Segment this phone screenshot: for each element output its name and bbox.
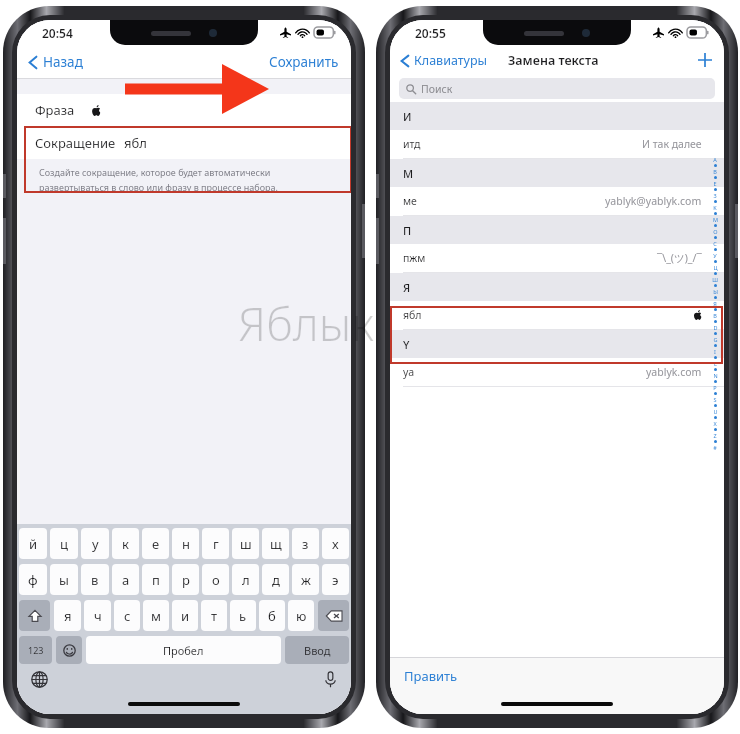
staticText: Ц bbox=[713, 264, 718, 271]
button[interactable]: ы bbox=[50, 564, 78, 595]
button[interactable]: Backspace bbox=[318, 600, 349, 631]
button[interactable]: ябл bbox=[390, 301, 724, 329]
button[interactable]: ф bbox=[19, 564, 47, 595]
button[interactable]: ч bbox=[84, 600, 111, 631]
staticText: Z bbox=[713, 432, 717, 439]
button[interactable]: ме bbox=[390, 187, 724, 215]
button[interactable]: э bbox=[322, 564, 349, 595]
staticText: A bbox=[713, 156, 717, 163]
staticText: З bbox=[713, 192, 717, 199]
staticText: а bbox=[122, 571, 130, 589]
button[interactable]: Клавиатуры bbox=[390, 47, 496, 74]
button[interactable]: 123 bbox=[19, 636, 52, 664]
staticText: # bbox=[713, 444, 717, 451]
button[interactable]: о bbox=[202, 564, 229, 595]
staticText: Я bbox=[713, 300, 717, 307]
staticText: з bbox=[302, 535, 309, 553]
staticText: пжм bbox=[403, 251, 426, 265]
staticText: ф bbox=[28, 571, 38, 589]
button[interactable]: ж bbox=[292, 564, 319, 595]
staticText: P bbox=[713, 384, 717, 391]
staticText: N bbox=[713, 372, 718, 379]
button[interactable]: ya bbox=[390, 358, 724, 386]
button[interactable]: ш bbox=[232, 528, 259, 559]
staticText: т bbox=[211, 607, 218, 625]
staticText: G bbox=[713, 336, 718, 343]
staticText: U bbox=[713, 408, 718, 415]
button[interactable]: Ввод bbox=[285, 636, 349, 664]
button[interactable]: т bbox=[201, 600, 227, 631]
button[interactable]: Фраза bbox=[17, 94, 351, 126]
button[interactable]: у bbox=[81, 528, 109, 559]
button[interactable]: Shift bbox=[19, 600, 50, 631]
button[interactable]: и bbox=[172, 600, 198, 631]
staticText: B bbox=[713, 312, 717, 319]
button[interactable]: н bbox=[172, 528, 199, 559]
staticText: Ш bbox=[712, 276, 718, 283]
button[interactable]: д bbox=[262, 564, 289, 595]
staticText: Y bbox=[403, 337, 410, 352]
staticText: Я bbox=[403, 280, 411, 295]
staticText: Назад bbox=[43, 53, 83, 71]
button[interactable]: л bbox=[232, 564, 259, 595]
staticText: щ bbox=[270, 535, 282, 553]
button[interactable]: с bbox=[114, 600, 140, 631]
button[interactable]: п bbox=[142, 564, 169, 595]
button[interactable]: Dictation bbox=[324, 671, 337, 688]
staticText: о bbox=[212, 571, 220, 589]
staticText: Клавиатуры bbox=[414, 52, 488, 69]
staticText: ябл bbox=[124, 134, 147, 152]
button[interactable]: к bbox=[112, 528, 139, 559]
staticText: я bbox=[64, 607, 72, 625]
staticText: B bbox=[713, 168, 717, 175]
button[interactable]: х bbox=[322, 528, 349, 559]
button[interactable]: Назад bbox=[17, 47, 91, 77]
staticText: ц bbox=[60, 535, 68, 553]
button[interactable]: в bbox=[81, 564, 109, 595]
button[interactable]: щ bbox=[262, 528, 289, 559]
button[interactable]: Сокращение bbox=[17, 127, 351, 159]
staticText: Замена текста bbox=[508, 52, 599, 69]
button[interactable]: б bbox=[259, 600, 285, 631]
staticText: И так далее bbox=[642, 137, 702, 151]
staticText: Править bbox=[404, 667, 458, 685]
button[interactable]: з bbox=[292, 528, 319, 559]
staticText: н bbox=[182, 535, 190, 553]
button[interactable]: Поиск bbox=[399, 78, 715, 99]
staticText: п bbox=[152, 571, 160, 589]
button[interactable]: Править bbox=[390, 658, 724, 694]
button[interactable]: ц bbox=[50, 528, 78, 559]
staticText: к bbox=[122, 535, 129, 553]
button[interactable]: ю bbox=[288, 600, 314, 631]
button[interactable]: й bbox=[19, 528, 47, 559]
staticText: в bbox=[91, 571, 99, 589]
staticText: ч bbox=[94, 607, 102, 625]
staticText: 123 bbox=[28, 644, 44, 656]
button[interactable]: е bbox=[142, 528, 169, 559]
button[interactable]: Сохранить bbox=[257, 47, 351, 77]
button[interactable]: Пробел bbox=[86, 636, 281, 664]
staticText: I bbox=[714, 348, 716, 355]
staticText: Сокращение bbox=[35, 134, 116, 152]
button[interactable]: а bbox=[112, 564, 139, 595]
button[interactable]: итд bbox=[390, 130, 724, 158]
staticText: й bbox=[29, 535, 38, 553]
staticText: Сохранить bbox=[269, 53, 339, 71]
button[interactable]: р bbox=[172, 564, 199, 595]
staticText: Ввод bbox=[304, 643, 331, 658]
button[interactable]: м bbox=[143, 600, 169, 631]
button[interactable]: ь bbox=[230, 600, 256, 631]
staticText: у bbox=[92, 535, 99, 553]
staticText: м bbox=[151, 607, 161, 625]
button[interactable]: пжм bbox=[390, 244, 724, 272]
staticText: L bbox=[714, 360, 717, 367]
staticText: Ы bbox=[713, 288, 718, 295]
button[interactable]: Add bbox=[686, 47, 724, 73]
button[interactable]: Emoji bbox=[56, 636, 82, 664]
button[interactable]: Change keyboard bbox=[31, 671, 48, 688]
staticText: Поиск bbox=[421, 82, 453, 96]
button[interactable]: г bbox=[202, 528, 229, 559]
staticText: х bbox=[332, 535, 339, 553]
staticText: S bbox=[713, 396, 717, 403]
button[interactable]: я bbox=[54, 600, 81, 631]
